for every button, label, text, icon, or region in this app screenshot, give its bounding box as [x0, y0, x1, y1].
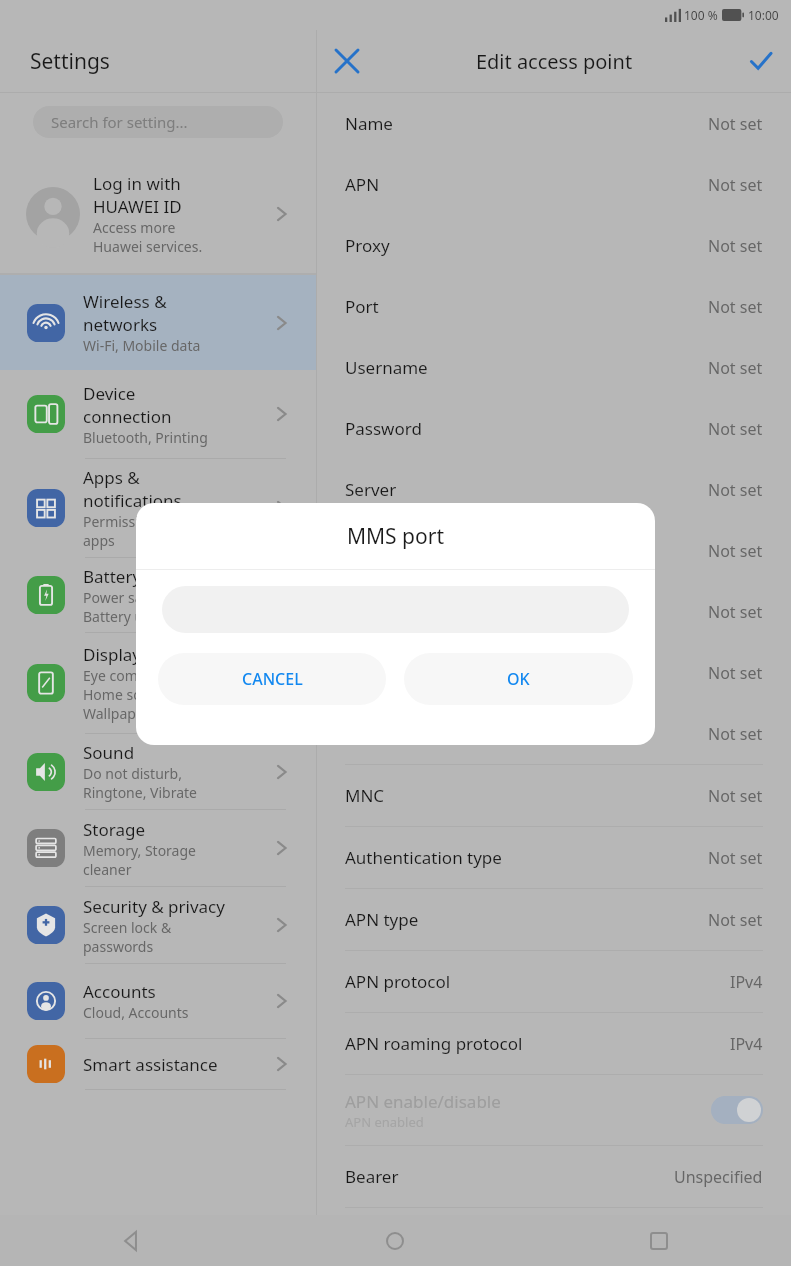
staticText: Cloud, Accounts: [83, 1003, 189, 1022]
staticText: Ringtone, Vibrate: [83, 783, 197, 802]
staticText: Search for setting...: [51, 112, 188, 132]
staticText: OK: [507, 668, 530, 690]
staticText: Battery: [83, 565, 142, 588]
staticText: Not set: [708, 601, 763, 623]
button[interactable]: Back: [0, 1215, 263, 1266]
button[interactable]: MNC: [317, 765, 791, 826]
staticText: APN type: [345, 908, 419, 931]
staticText: Not set: [708, 296, 763, 318]
staticText: APN enabled: [345, 1113, 424, 1131]
staticText: networks: [83, 313, 158, 336]
button[interactable]: Accounts: [0, 964, 316, 1038]
staticText: APN roaming protocol: [345, 1032, 523, 1055]
staticText: Huawei services.: [93, 237, 203, 256]
button[interactable]: Server: [317, 459, 791, 520]
button[interactable]: Username: [317, 337, 791, 398]
staticText: Not set: [708, 723, 763, 745]
button[interactable]: Sound: [0, 734, 316, 809]
button[interactable]: Search for setting...: [33, 106, 283, 138]
button[interactable]: Proxy: [317, 215, 791, 276]
button[interactable]: MMS port: [317, 642, 791, 703]
button[interactable]: Password: [317, 398, 791, 459]
staticText: Bearer: [345, 1165, 399, 1188]
staticText: Name: [345, 112, 393, 135]
staticText: CANCEL: [242, 668, 303, 690]
staticText: Storage: [83, 818, 146, 841]
staticText: Authentication type: [345, 846, 502, 869]
staticText: Not set: [708, 785, 763, 807]
button[interactable]: Name: [317, 93, 791, 154]
button[interactable]: Port: [317, 276, 791, 337]
button[interactable]: Smart assistance: [0, 1039, 316, 1089]
staticText: Accounts: [83, 980, 156, 1003]
button[interactable]: CANCEL: [158, 653, 386, 705]
button[interactable]: Display: [0, 633, 316, 733]
staticText: cleaner: [83, 860, 132, 879]
button[interactable]: APN protocol: [317, 951, 791, 1012]
staticText: Not set: [708, 847, 763, 869]
button[interactable]: Bearer: [317, 1146, 791, 1207]
staticText: Wi-Fi, Mobile data: [83, 336, 201, 355]
button[interactable]: MMSC: [317, 520, 791, 581]
button[interactable]: OK: [404, 653, 633, 705]
button[interactable]: Apps &: [0, 459, 316, 557]
staticText: Security & privacy: [83, 895, 225, 918]
button[interactable]: Device: [0, 370, 316, 458]
button[interactable]: Authentication type: [317, 827, 791, 888]
staticText: Edit access point: [377, 48, 731, 75]
button[interactable]: Save: [731, 31, 791, 91]
staticText: Home screen style,: [83, 685, 208, 704]
button[interactable]: APN roaming protocol: [317, 1013, 791, 1074]
button[interactable]: APN enable/disable: [317, 1075, 791, 1145]
button[interactable]: Recents: [527, 1215, 791, 1266]
staticText: Unspecified: [674, 1166, 763, 1188]
button[interactable]: Log in with: [0, 154, 316, 273]
staticText: Apps &: [83, 466, 140, 489]
staticText: Wireless &: [83, 290, 167, 313]
staticText: Wallpaper: [83, 704, 150, 723]
button[interactable]: Storage: [0, 810, 316, 886]
staticText: Not set: [708, 357, 763, 379]
staticText: Access more: [93, 218, 176, 237]
staticText: Not set: [708, 113, 763, 135]
button[interactable]: Security & privacy: [0, 887, 316, 963]
staticText: Server: [345, 478, 397, 501]
staticText: Battery usage: [83, 607, 175, 626]
staticText: Not set: [708, 418, 763, 440]
button[interactable]: APN: [317, 154, 791, 215]
staticText: Log in with: [93, 172, 181, 195]
staticText: Screen lock &: [83, 918, 172, 937]
staticText: Not set: [708, 235, 763, 257]
staticText: Not set: [708, 540, 763, 562]
staticText: Bluetooth, Printing: [83, 428, 208, 447]
button[interactable]: APN type: [317, 889, 791, 950]
staticText: connection: [83, 405, 172, 428]
staticText: Username: [345, 356, 428, 379]
button[interactable]: MCC: [317, 703, 791, 764]
staticText: Password: [345, 417, 422, 440]
staticText: Not set: [708, 909, 763, 931]
staticText: Memory, Storage: [83, 841, 196, 860]
button[interactable]: Close: [317, 31, 377, 91]
staticText: Settings: [30, 47, 110, 76]
staticText: Not set: [708, 662, 763, 684]
staticText: Eye comfort,: [83, 666, 166, 685]
staticText: Display: [83, 643, 141, 666]
staticText: APN: [345, 173, 380, 196]
staticText: Do not disturb,: [83, 764, 182, 783]
staticText: 10:00: [748, 7, 779, 23]
staticText: Device: [83, 382, 136, 405]
staticText: Port: [345, 295, 379, 318]
button[interactable]: Battery: [0, 558, 316, 632]
staticText: passwords: [83, 937, 154, 956]
staticText: MNC: [345, 784, 385, 807]
button[interactable]: MMS proxy: [317, 581, 791, 642]
button[interactable]: Wireless &: [0, 275, 316, 370]
staticText: MMS port: [345, 661, 424, 684]
staticText: Permissions,: [83, 512, 167, 531]
staticText: Smart assistance: [83, 1053, 218, 1076]
